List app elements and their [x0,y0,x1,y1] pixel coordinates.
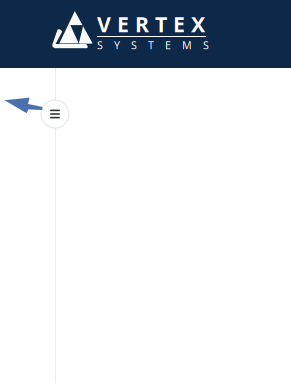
staticText: VERTEX [97,10,205,38]
button[interactable]: Open menu [41,100,69,128]
staticText: S Y S T E M S [97,38,209,52]
